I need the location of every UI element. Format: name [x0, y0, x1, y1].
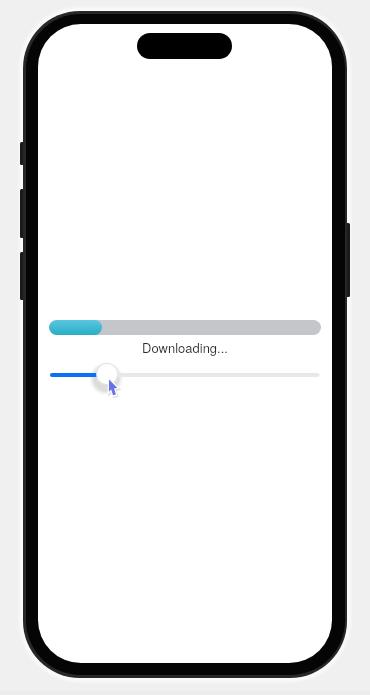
- button[interactable]: Download speed slider: [44, 358, 326, 400]
- staticText: Downloading...: [142, 338, 228, 357]
- button[interactable]: Download progress: [49, 320, 321, 335]
